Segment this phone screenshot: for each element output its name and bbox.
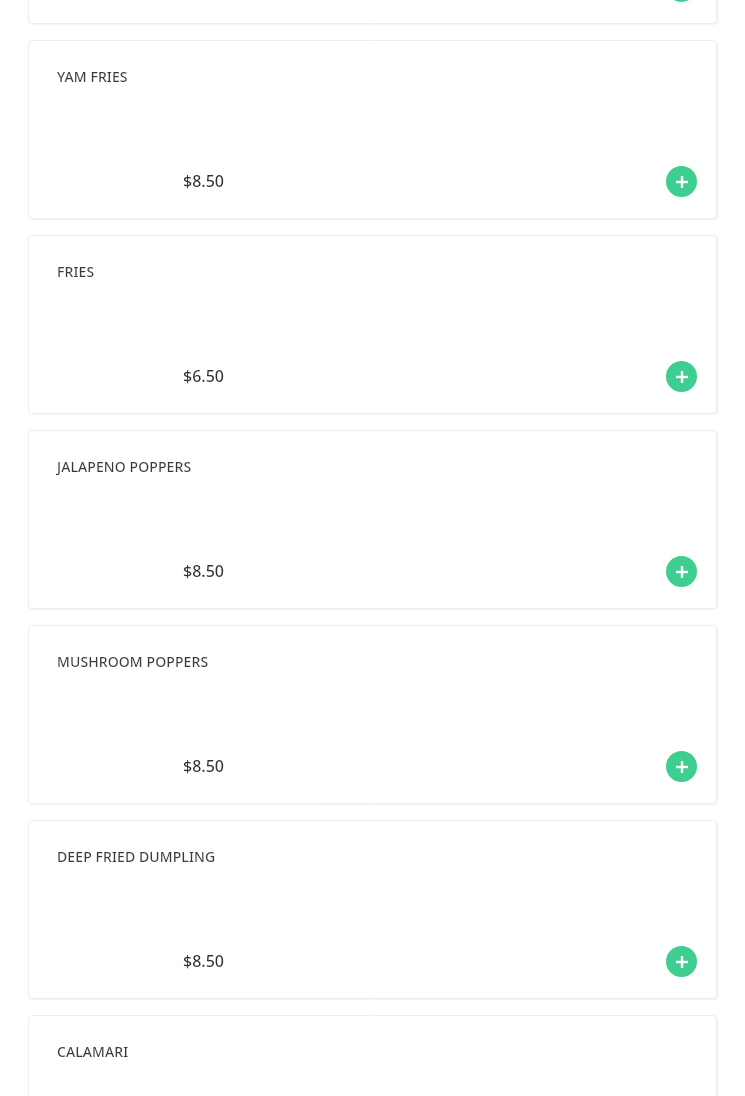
staticText: FRIES <box>57 262 95 281</box>
staticText: $8.50 <box>183 755 224 777</box>
button[interactable]: Add SWEET POTATO FRIES to order <box>666 0 697 2</box>
staticText: MUSHROOM POPPERS <box>57 652 209 671</box>
button[interactable]: FRIES <box>28 235 717 414</box>
button[interactable]: Add YAM FRIES to order <box>666 166 697 197</box>
staticText: CALAMARI <box>57 1042 129 1061</box>
button[interactable]: JALAPENO POPPERS <box>28 430 717 609</box>
staticText: JALAPENO POPPERS <box>57 457 192 476</box>
staticText: DEEP FRIED DUMPLING <box>57 847 216 866</box>
staticText: $8.50 <box>183 560 224 582</box>
button[interactable]: SWEET POTATO FRIES <box>28 0 717 24</box>
staticText: $6.50 <box>183 365 224 387</box>
button[interactable]: MUSHROOM POPPERS <box>28 625 717 804</box>
button[interactable]: DEEP FRIED DUMPLING <box>28 820 717 999</box>
staticText: $8.50 <box>183 170 224 192</box>
button[interactable]: Add FRIES to order <box>666 361 697 392</box>
button[interactable]: Add DEEP FRIED DUMPLING to order <box>666 946 697 977</box>
button[interactable]: Add JALAPENO POPPERS to order <box>666 556 697 587</box>
button[interactable]: Add MUSHROOM POPPERS to order <box>666 751 697 782</box>
button[interactable]: CALAMARI <box>28 1015 717 1096</box>
staticText: YAM FRIES <box>57 67 128 86</box>
button[interactable]: YAM FRIES <box>28 40 717 219</box>
staticText: $8.50 <box>183 950 224 972</box>
